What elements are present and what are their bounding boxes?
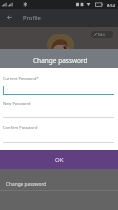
button[interactable]: Current Password*	[0, 70, 118, 98]
button[interactable]: New Password	[0, 98, 118, 121]
staticText: Profile	[23, 14, 41, 22]
button[interactable]: Back	[0, 9, 19, 26]
staticText: Change password	[33, 56, 88, 65]
button[interactable]: OK	[0, 150, 118, 169]
button[interactable]: Edit	[91, 31, 113, 38]
staticText: 8:54	[107, 3, 115, 8]
staticText: Edit	[98, 32, 105, 37]
staticText: OK	[55, 156, 64, 164]
button[interactable]: Confirm Password	[0, 122, 118, 145]
staticText: Current Password*	[3, 76, 39, 81]
staticText: Confirm Password	[3, 125, 38, 130]
staticText: Change password	[6, 181, 47, 188]
staticText: New Password	[3, 101, 31, 106]
